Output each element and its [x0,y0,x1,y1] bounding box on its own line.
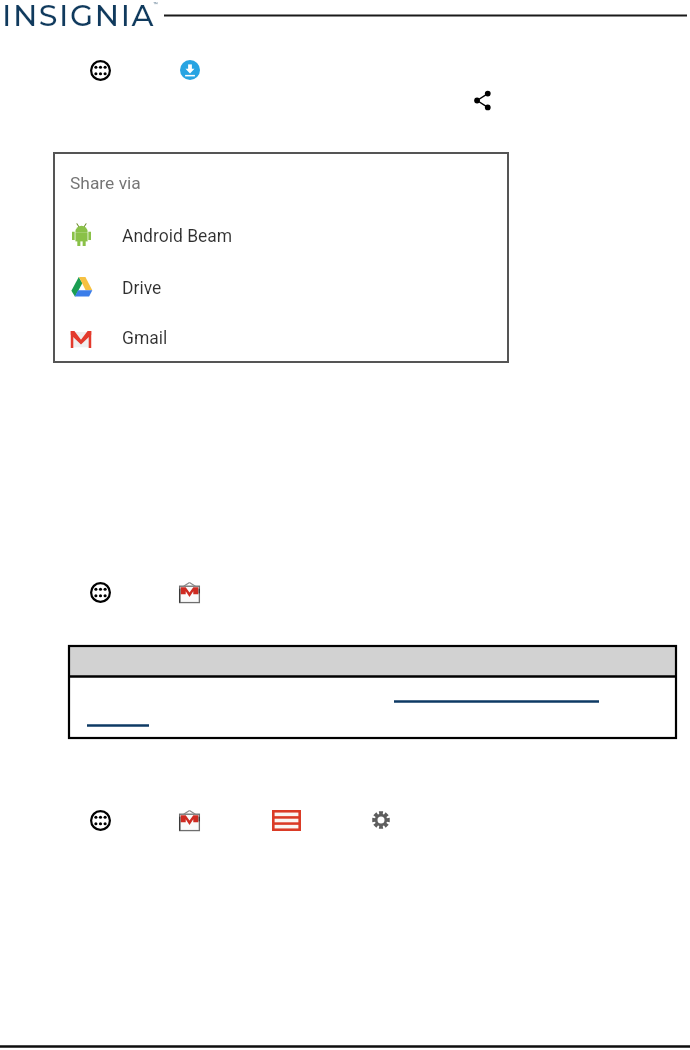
button[interactable]: Share [474,90,491,111]
button[interactable]: INSIGNIA [2,0,162,34]
staticText: INSIGNIA [2,0,156,34]
button[interactable]: Gmail [54,314,508,362]
button[interactable]: Drive [54,262,508,314]
staticText: Android Beam [122,226,233,247]
button[interactable]: Menu [272,810,301,831]
button[interactable]: Settings [372,811,390,829]
button[interactable]: All apps [90,810,111,831]
button[interactable]: Gmail [179,582,200,603]
staticText: ™ [153,1,159,10]
staticText: Drive [122,278,162,299]
button[interactable]: All apps [90,60,111,81]
button[interactable]: Gmail [179,810,200,831]
button[interactable]: All apps [90,582,111,603]
staticText: Gmail [122,328,168,349]
button[interactable]: Android Beam [54,210,508,262]
button[interactable] [69,646,676,738]
staticText: Share via [70,173,141,193]
button[interactable]: Download [180,60,200,80]
